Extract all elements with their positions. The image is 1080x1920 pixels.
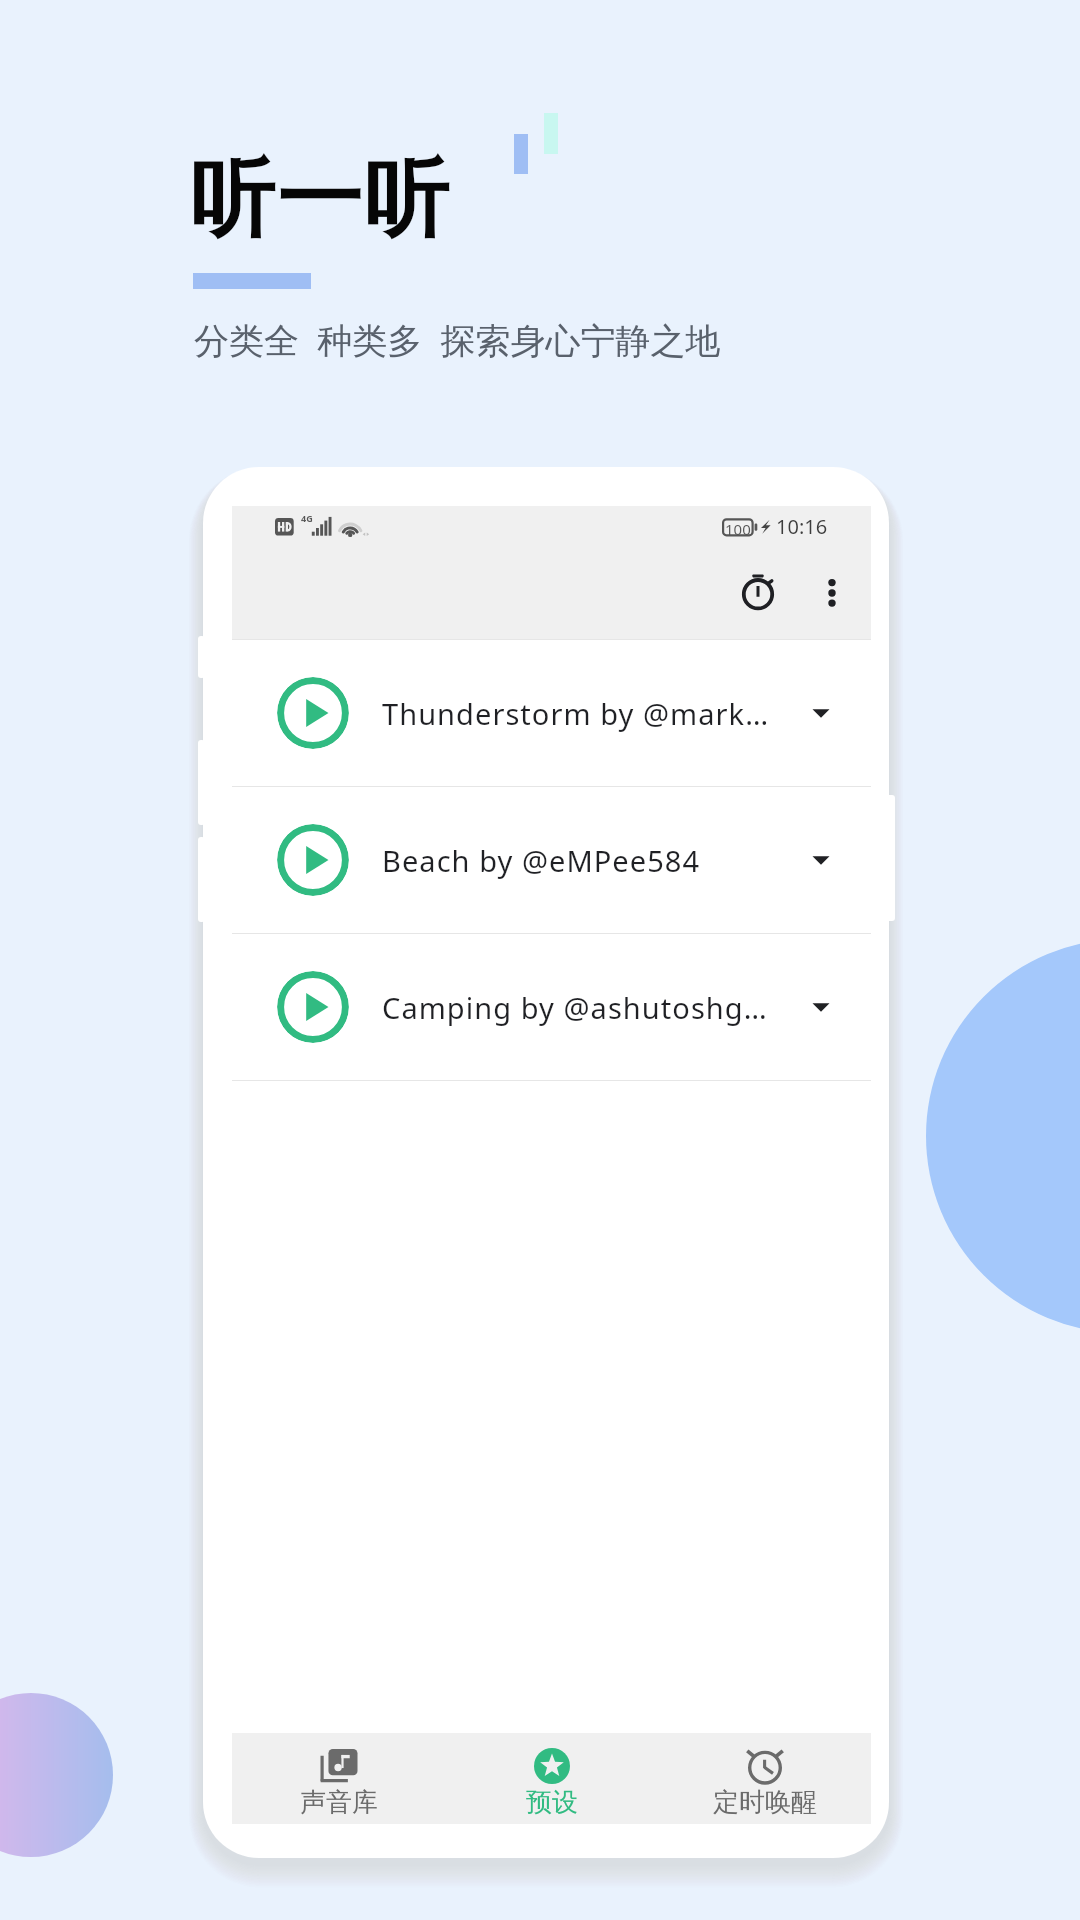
staticText: 100 bbox=[725, 519, 751, 536]
button[interactable]: Play Camping by @ashutoshg… bbox=[232, 934, 871, 1080]
staticText: Thunderstorm by @mark… bbox=[382, 694, 770, 733]
button[interactable]: 定时唤醒 bbox=[658, 1733, 871, 1824]
button[interactable]: 预设 bbox=[445, 1733, 658, 1824]
button[interactable]: Play Thunderstorm by @mark… bbox=[232, 640, 871, 786]
button[interactable]: Play Camping by @ashutoshg… bbox=[277, 971, 349, 1043]
staticText: 10:16 bbox=[776, 513, 828, 540]
staticText: 预设 bbox=[526, 1786, 578, 1819]
button[interactable]: Timer bbox=[726, 562, 790, 626]
button[interactable]: More options bbox=[802, 562, 862, 622]
button[interactable]: Expand Beach by @eMPee584 bbox=[801, 840, 841, 880]
button[interactable]: Expand Thunderstorm by @mark… bbox=[801, 693, 841, 733]
staticText: Camping by @ashutoshg… bbox=[382, 988, 768, 1027]
button[interactable]: Play Thunderstorm by @mark… bbox=[277, 677, 349, 749]
staticText: 分类全 种类多 探索身心宁静之地 bbox=[194, 316, 721, 364]
button[interactable]: Play Beach by @eMPee584 bbox=[277, 824, 349, 896]
button[interactable]: 声音库 bbox=[232, 1733, 445, 1824]
staticText: 听一听 bbox=[189, 146, 450, 253]
staticText: 声音库 bbox=[300, 1786, 378, 1819]
staticText: 定时唤醒 bbox=[713, 1786, 817, 1819]
button[interactable]: Expand Camping by @ashutoshg… bbox=[801, 987, 841, 1027]
staticText: Beach by @eMPee584 bbox=[382, 841, 701, 880]
staticText: 4G bbox=[301, 512, 313, 524]
button[interactable]: Play Beach by @eMPee584 bbox=[232, 787, 871, 933]
